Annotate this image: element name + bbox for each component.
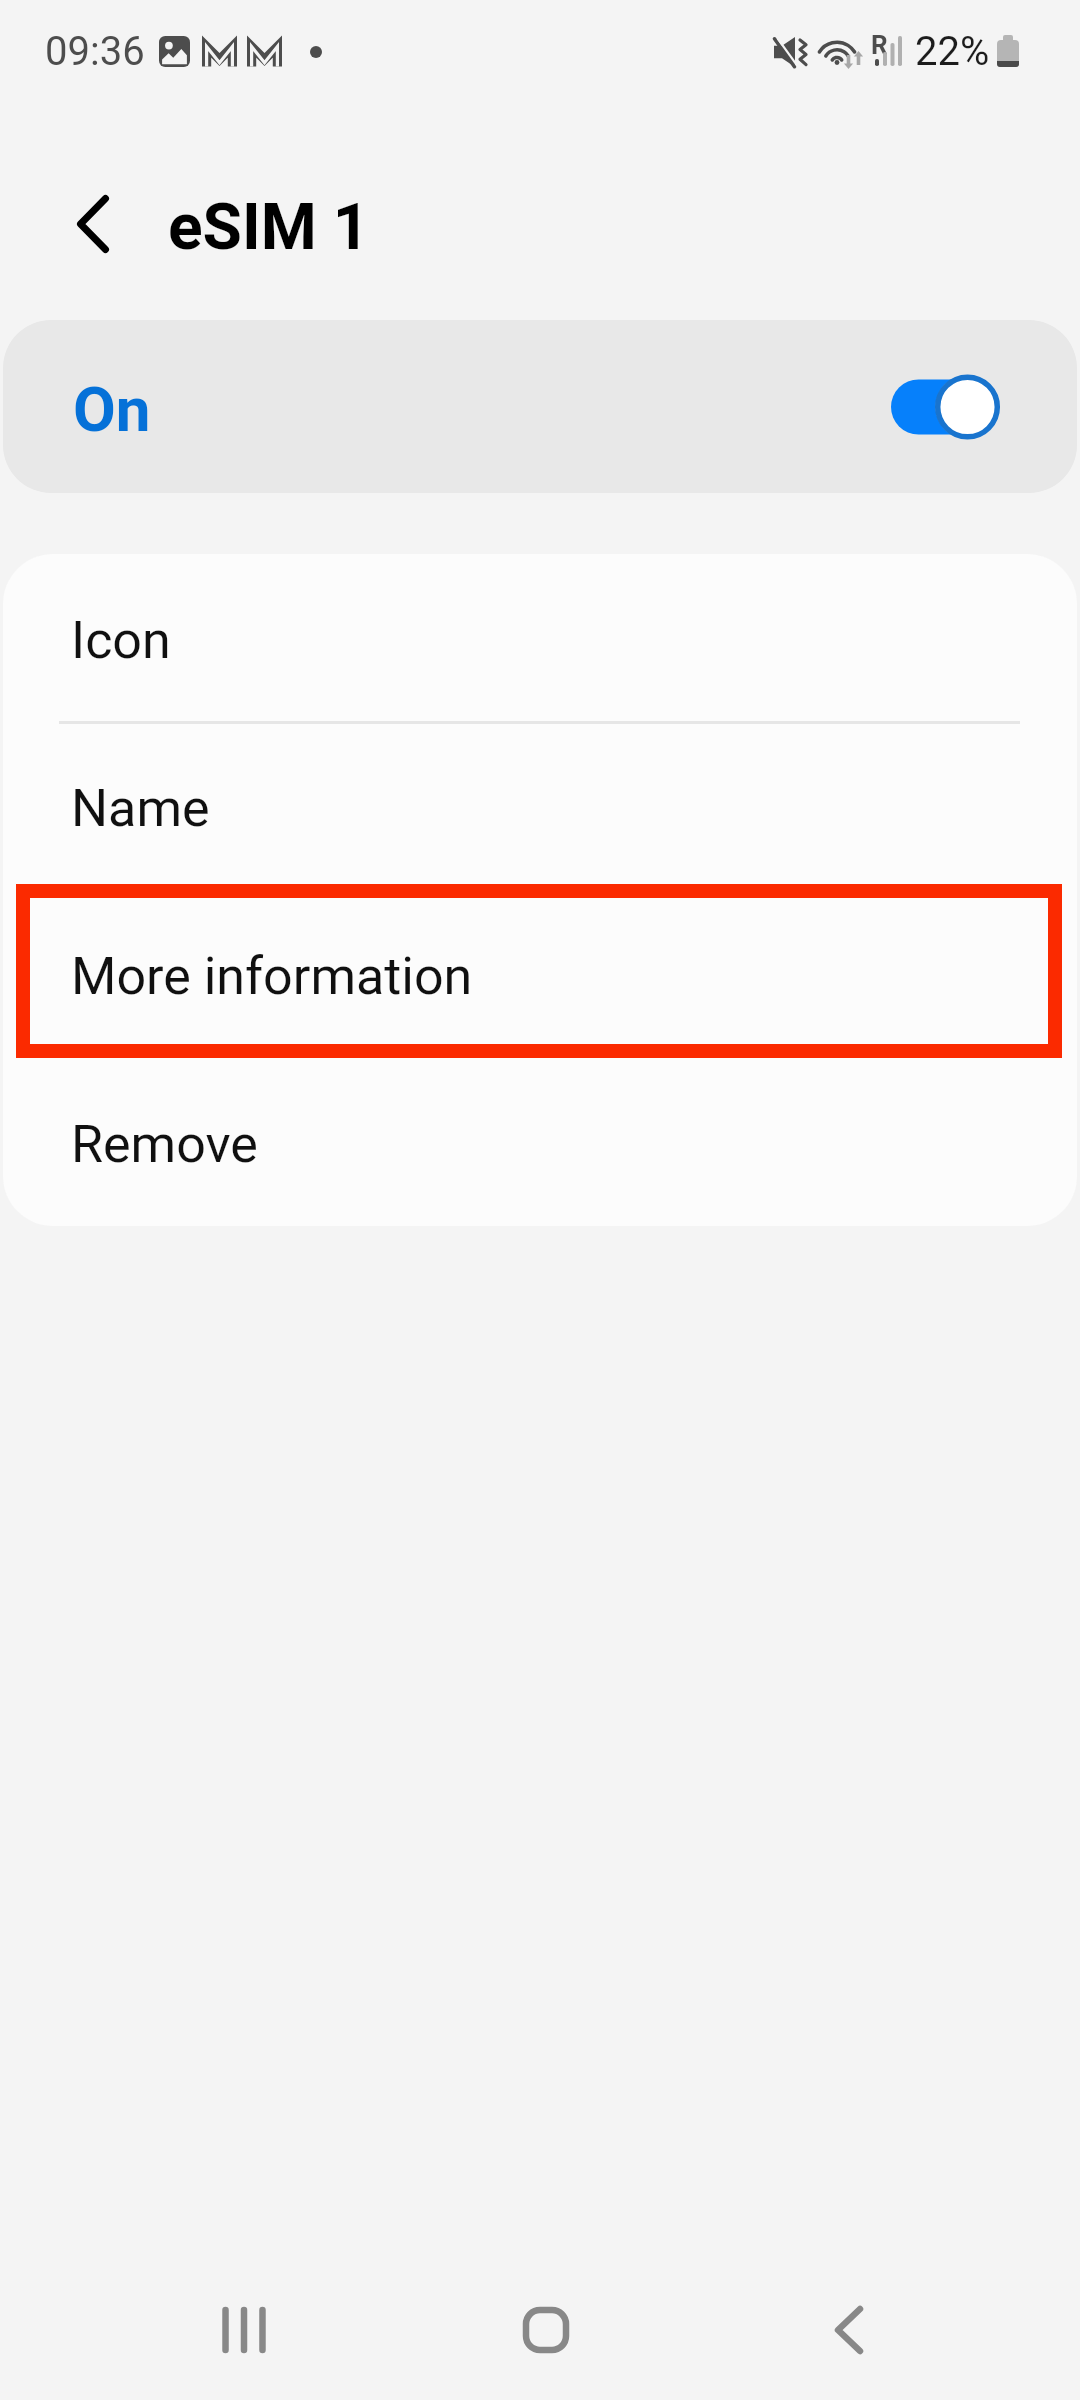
staticText: On [73, 373, 151, 446]
staticText: 22% [915, 28, 990, 75]
staticText: 09:36 [45, 28, 145, 75]
button[interactable]: Recent apps [174, 2260, 314, 2400]
staticText: More information [71, 946, 473, 1007]
button[interactable]: Remove [3, 1058, 1077, 1226]
button[interactable]: More information [3, 890, 1077, 1058]
staticText: eSIM 1 [168, 190, 370, 265]
button[interactable]: On [3, 320, 1077, 493]
button[interactable]: Back [779, 2260, 919, 2400]
button[interactable]: Icon [3, 554, 1077, 722]
button[interactable]: Home [476, 2260, 616, 2400]
button[interactable]: Navigate up [38, 164, 148, 284]
staticText: R [871, 30, 888, 60]
staticText: Icon [71, 610, 171, 671]
staticText: Remove [71, 1114, 258, 1175]
button[interactable]: Name [3, 722, 1077, 890]
staticText: Name [71, 778, 210, 839]
